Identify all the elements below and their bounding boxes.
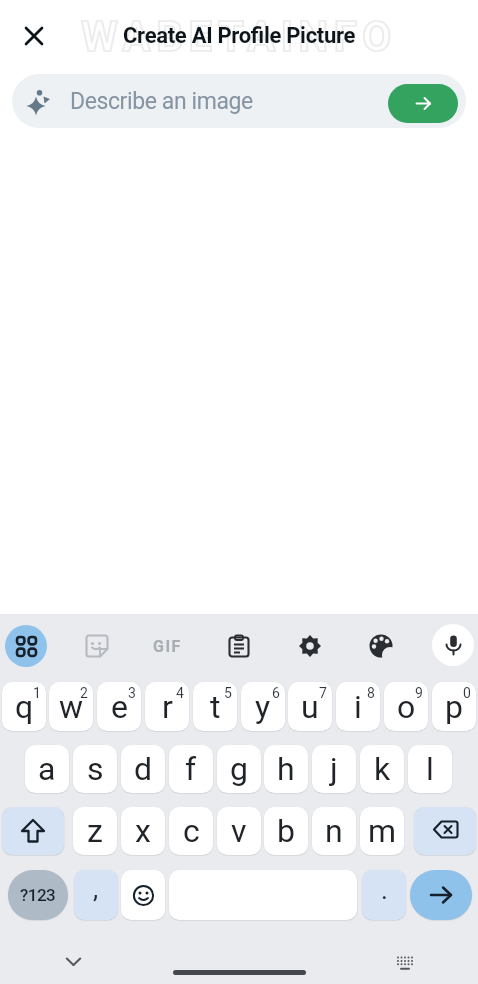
staticText: k	[374, 750, 391, 788]
button[interactable]	[2, 807, 64, 855]
button[interactable]	[288, 682, 332, 731]
staticText: h	[277, 750, 295, 788]
button[interactable]	[359, 624, 403, 668]
staticText: l	[426, 750, 434, 788]
staticText: y	[255, 688, 271, 726]
button[interactable]: ?123	[8, 870, 68, 920]
staticText: 5	[224, 685, 232, 701]
staticText: 6	[272, 685, 280, 701]
staticText: 7	[319, 685, 327, 701]
button[interactable]: c	[169, 807, 213, 855]
staticText: 4	[176, 685, 184, 701]
button[interactable]: h	[264, 745, 308, 793]
button[interactable]	[173, 970, 306, 975]
staticText: a	[38, 750, 56, 788]
button[interactable]	[383, 942, 427, 984]
staticText: u	[301, 688, 319, 726]
button[interactable]: z	[73, 807, 117, 855]
staticText: 0	[463, 685, 471, 701]
staticText: f	[185, 750, 197, 788]
button[interactable]	[49, 682, 93, 731]
button[interactable]	[241, 682, 285, 731]
button[interactable]	[121, 870, 165, 920]
staticText: i	[354, 688, 362, 726]
button[interactable]: ,	[74, 870, 118, 920]
staticText: g	[230, 750, 248, 788]
staticText: o	[397, 688, 416, 726]
button[interactable]: x	[121, 807, 165, 855]
staticText: ,	[93, 874, 99, 904]
staticText: j	[330, 750, 338, 788]
button[interactable]: a	[25, 745, 69, 793]
staticText: Describe an image	[70, 88, 253, 115]
button[interactable]	[414, 807, 476, 855]
button[interactable]: s	[73, 745, 117, 793]
staticText: e	[111, 688, 128, 726]
staticText: c	[183, 812, 200, 850]
button[interactable]	[288, 624, 332, 668]
button[interactable]: k	[360, 745, 404, 793]
staticText: w	[59, 688, 84, 726]
staticText: .	[381, 875, 388, 905]
staticText: v	[231, 812, 247, 850]
staticText: d	[134, 750, 153, 788]
staticText: x	[135, 812, 151, 850]
button[interactable]	[384, 682, 428, 731]
staticText: 9	[415, 685, 423, 701]
button[interactable]	[410, 870, 472, 920]
button[interactable]: Describe an image	[12, 74, 466, 128]
button[interactable]	[5, 625, 47, 667]
staticText: Create AI Profile Picture	[123, 23, 356, 49]
button[interactable]: j	[312, 745, 356, 793]
staticText: q	[15, 688, 34, 726]
staticText: p	[445, 688, 463, 726]
button[interactable]	[432, 624, 474, 666]
staticText: 1	[33, 685, 41, 701]
staticText: 2	[80, 685, 88, 701]
staticText: ?123	[20, 885, 56, 905]
button[interactable]: .	[362, 870, 406, 920]
button[interactable]	[97, 682, 141, 731]
staticText: b	[277, 812, 295, 850]
staticText: t	[210, 688, 221, 726]
button[interactable]	[10, 12, 58, 60]
button[interactable]: f	[169, 745, 213, 793]
button[interactable]	[336, 682, 380, 731]
button[interactable]	[217, 624, 261, 668]
button[interactable]: g	[217, 745, 261, 793]
button[interactable]: n	[312, 807, 356, 855]
staticText: s	[87, 750, 104, 788]
button[interactable]	[193, 682, 237, 731]
staticText: r	[162, 688, 173, 726]
button[interactable]	[51, 941, 95, 984]
button[interactable]	[145, 682, 189, 731]
staticText: n	[325, 812, 343, 850]
staticText: WABETAINFO	[81, 12, 397, 61]
staticText: z	[87, 812, 103, 850]
button[interactable]	[75, 624, 119, 668]
button[interactable]: v	[217, 807, 261, 855]
button[interactable]: GIF	[145, 624, 189, 668]
button[interactable]: l	[408, 745, 452, 793]
button[interactable]	[388, 84, 458, 123]
staticText: 3	[128, 685, 136, 701]
button[interactable]	[432, 682, 476, 731]
staticText: 8	[367, 685, 375, 701]
button[interactable]: b	[264, 807, 308, 855]
button[interactable]: m	[360, 807, 404, 855]
staticText: m	[368, 812, 397, 850]
button[interactable]: d	[121, 745, 165, 793]
staticText: GIF	[153, 637, 182, 656]
button[interactable]	[2, 682, 46, 731]
